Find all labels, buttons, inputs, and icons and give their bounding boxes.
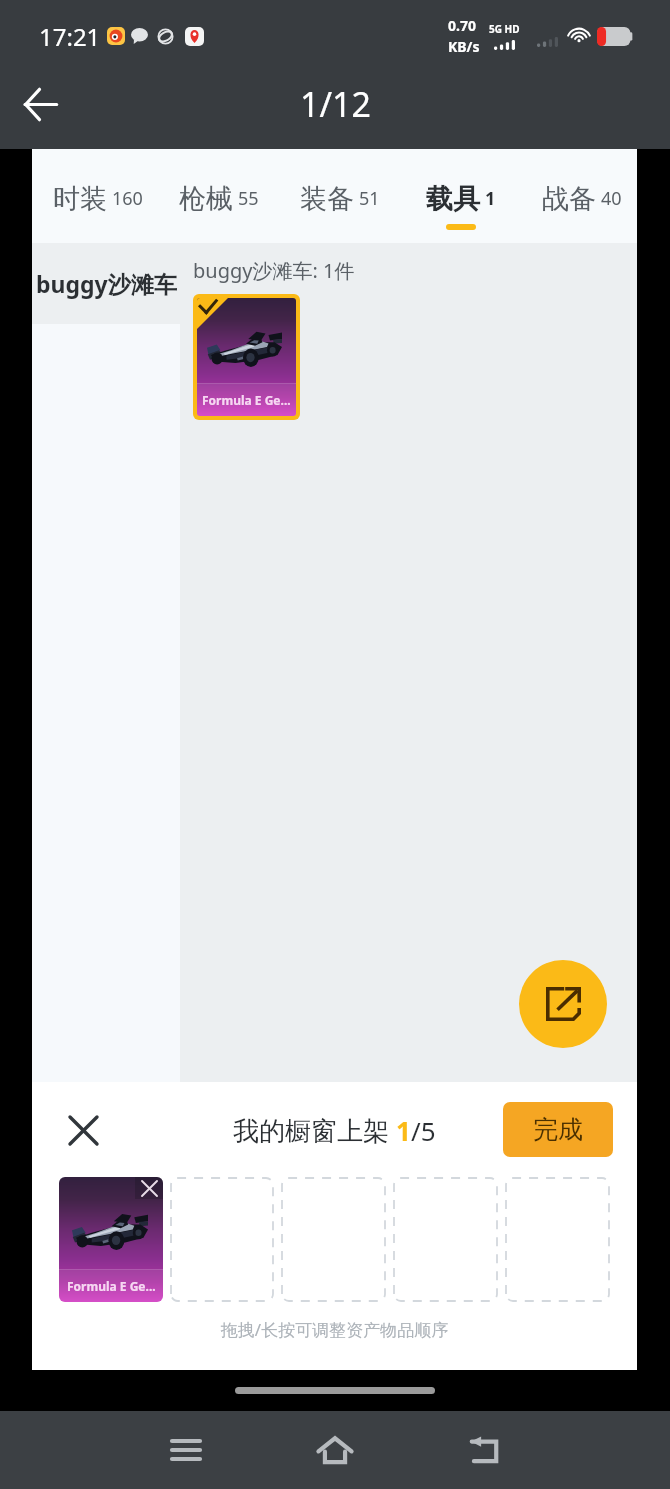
staticText: 完成 — [533, 1114, 583, 1145]
staticText: 40 — [601, 186, 622, 211]
button[interactable]: Recents — [156, 1420, 216, 1480]
staticText: 160 — [112, 186, 143, 211]
staticText: Formula E Ge... — [202, 392, 291, 408]
staticText: /5 — [411, 1113, 436, 1148]
button[interactable]: buggy沙滩车 — [32, 243, 180, 324]
staticText: 拖拽/长按可调整资产物品顺序 — [32, 1318, 637, 1341]
staticText: 1/12 — [300, 81, 371, 127]
staticText: 5G HD — [489, 22, 520, 36]
button[interactable]: Formula E Ge... — [59, 1177, 163, 1302]
staticText: buggy沙滩车: 1件 — [193, 257, 355, 284]
button[interactable]: Share — [519, 960, 607, 1048]
staticText: 战备 — [542, 182, 596, 216]
staticText: 枪械 — [179, 182, 233, 216]
button[interactable]: 完成 — [503, 1102, 613, 1157]
button[interactable]: 装备 — [274, 149, 395, 243]
staticText: buggy沙滩车 — [36, 268, 177, 299]
staticText: 0.70 — [448, 16, 476, 35]
button[interactable]: 载具 — [395, 149, 516, 243]
staticText: 载具 — [426, 182, 480, 216]
staticText: 1 — [396, 1113, 411, 1148]
staticText: 装备 — [300, 182, 354, 216]
staticText: Formula E Ge... — [67, 1278, 156, 1294]
staticText: 1 — [485, 186, 496, 211]
staticText: 时装 — [53, 182, 107, 216]
button[interactable]: Formula E Ge... — [197, 298, 296, 416]
staticText: 我的橱窗上架 — [233, 1112, 396, 1148]
button[interactable]: Home — [305, 1420, 365, 1480]
button[interactable]: Back — [10, 74, 70, 134]
staticText: 17:21 — [39, 20, 101, 53]
button[interactable]: 战备 — [516, 149, 637, 243]
button[interactable]: 时装 — [32, 149, 153, 243]
button[interactable]: 枪械 — [153, 149, 274, 243]
staticText: KB/s — [448, 37, 480, 56]
staticText: 51 — [359, 186, 380, 211]
button[interactable]: Close — [55, 1102, 111, 1158]
button[interactable]: Back — [454, 1420, 514, 1480]
staticText: 55 — [238, 186, 259, 211]
